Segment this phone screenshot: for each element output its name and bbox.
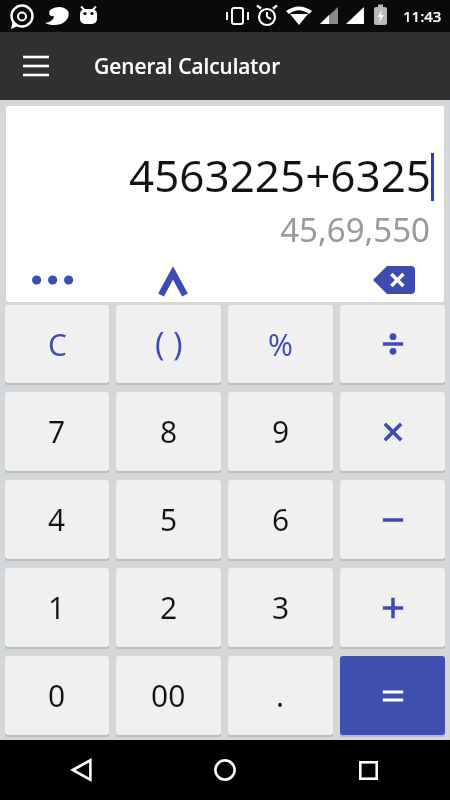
other: Divide [340, 305, 445, 385]
staticText: 4563225+6325 [128, 145, 431, 205]
staticText: 0 [48, 675, 66, 716]
staticText: ( ) [155, 322, 183, 366]
button[interactable]: 5 [116, 480, 221, 559]
staticText: . [276, 675, 285, 716]
button[interactable]: 00 [116, 656, 221, 735]
other: Equals [340, 656, 445, 737]
button[interactable]: 3 [228, 568, 333, 647]
button[interactable]: . [228, 656, 333, 735]
button[interactable]: Open navigation menu [12, 42, 60, 90]
button[interactable]: 8 [116, 392, 221, 471]
button[interactable] [340, 305, 445, 383]
button[interactable]: Home [199, 744, 251, 796]
button[interactable]: ( ) [116, 305, 221, 383]
button[interactable]: 9 [228, 392, 333, 471]
staticText: 11:43 [403, 6, 442, 26]
staticText: 45,69,550 [6, 207, 430, 252]
staticText: 7 [48, 411, 66, 452]
button[interactable] [340, 656, 445, 735]
other: Multiply [340, 392, 445, 473]
button[interactable]: 0 [5, 656, 109, 735]
staticText: 3 [272, 587, 290, 628]
button[interactable]: 7 [5, 392, 109, 471]
button[interactable]: More options [32, 260, 92, 300]
staticText: % [268, 324, 293, 365]
staticText: 8 [160, 411, 178, 452]
button[interactable]: Recent apps [342, 744, 394, 796]
button[interactable]: 2 [116, 568, 221, 647]
other: Subtract [340, 480, 445, 561]
staticText: 2 [160, 587, 178, 628]
staticText: 5 [160, 499, 178, 540]
button[interactable]: Backspace [366, 260, 422, 300]
button[interactable]: Back [56, 744, 108, 796]
staticText: 4 [48, 499, 66, 540]
button[interactable]: 4 [5, 480, 109, 559]
other: Add [340, 568, 445, 649]
button[interactable]: 6 [228, 480, 333, 559]
staticText: General Calculator [94, 52, 281, 81]
button[interactable]: % [228, 305, 333, 383]
button[interactable] [340, 480, 445, 559]
button[interactable]: 1 [5, 568, 109, 647]
staticText: C [48, 324, 67, 365]
staticText: 9 [272, 411, 290, 452]
staticText: 6 [272, 499, 290, 540]
staticText: 00 [151, 675, 186, 716]
button[interactable]: C [5, 305, 109, 383]
button[interactable]: Expand history [149, 260, 197, 300]
staticText: 1 [48, 587, 66, 628]
button[interactable] [340, 568, 445, 647]
button[interactable] [340, 392, 445, 471]
